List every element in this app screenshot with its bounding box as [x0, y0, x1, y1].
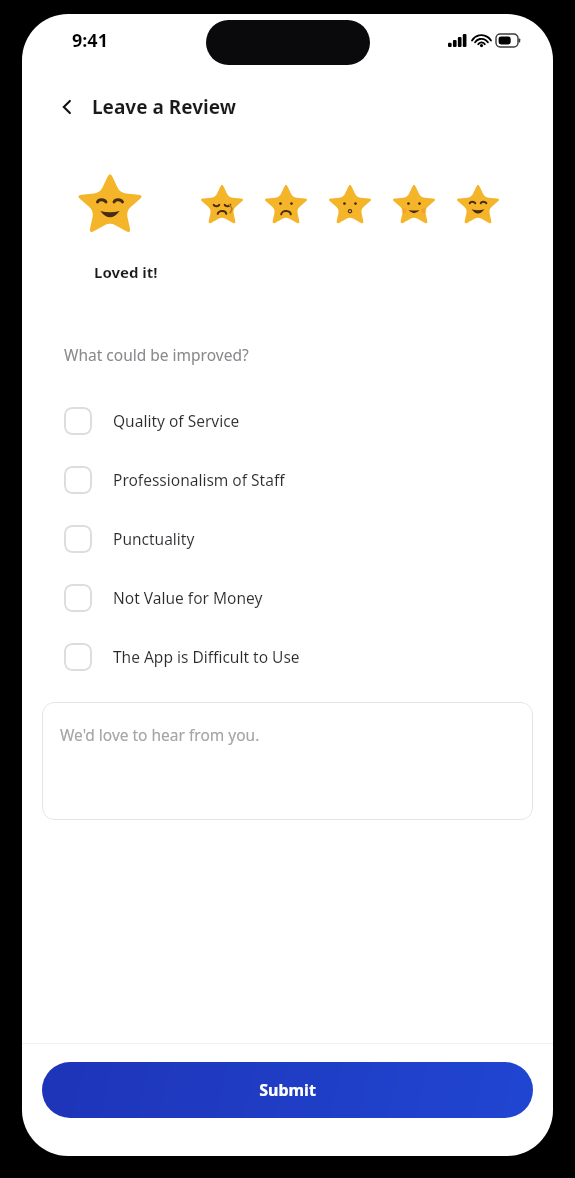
button[interactable]: The App is Difficult to Use — [22, 627, 553, 686]
button[interactable]: Professionalism of Staff — [22, 450, 553, 509]
button[interactable]: Back — [50, 90, 84, 124]
staticText: Punctuality — [113, 528, 195, 549]
button[interactable]: Rate 4 stars — [390, 182, 438, 230]
staticText: The App is Difficult to Use — [113, 646, 300, 667]
button[interactable]: We'd love to hear from you. — [42, 702, 533, 820]
button[interactable]: Selected rating: Loved it — [74, 170, 146, 242]
button[interactable]: Quality of Service — [22, 391, 553, 450]
button[interactable]: Not Value for Money — [22, 568, 553, 627]
button[interactable]: Rate 2 stars — [262, 182, 310, 230]
button[interactable]: Rate 5 stars — [454, 182, 502, 230]
button[interactable]: Submit — [42, 1062, 533, 1118]
staticText: Loved it! — [94, 262, 158, 282]
staticText: Submit — [259, 1079, 316, 1101]
button[interactable]: Punctuality — [22, 509, 553, 568]
staticText: Leave a Review — [92, 94, 236, 120]
button[interactable]: Rate 3 stars — [326, 182, 374, 230]
staticText: We'd love to hear from you. — [60, 724, 260, 745]
button[interactable]: Rate 1 star — [198, 182, 246, 230]
staticText: Quality of Service — [113, 410, 240, 431]
staticText: Not Value for Money — [113, 587, 263, 608]
staticText: Professionalism of Staff — [113, 469, 285, 490]
staticText: 9:41 — [72, 28, 108, 53]
staticText: What could be improved? — [64, 344, 249, 365]
